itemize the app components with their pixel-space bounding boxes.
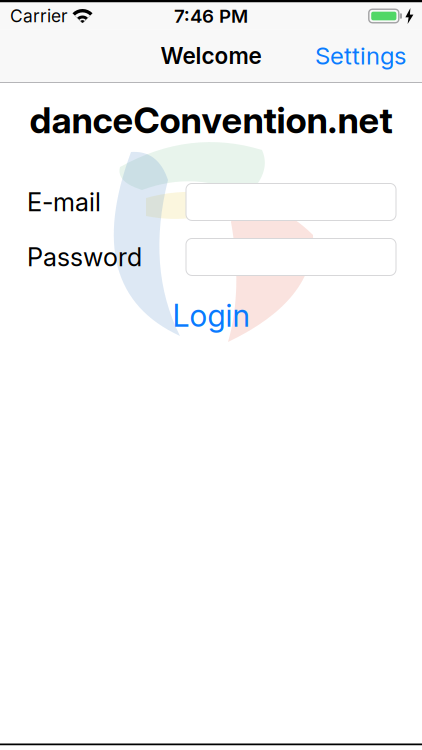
button[interactable]: Settings [315,42,406,70]
staticText: Settings [315,42,406,70]
staticText: Login [172,297,249,334]
button[interactable]: Login [172,297,249,334]
staticText: 7:46 PM [174,5,248,27]
staticText: danceConvention.net [29,99,392,141]
staticText: E-mail [27,187,101,217]
button[interactable]: Password [186,238,396,275]
staticText: Welcome [160,42,261,69]
staticText: Password [27,242,142,272]
staticText: Carrier [10,6,68,26]
